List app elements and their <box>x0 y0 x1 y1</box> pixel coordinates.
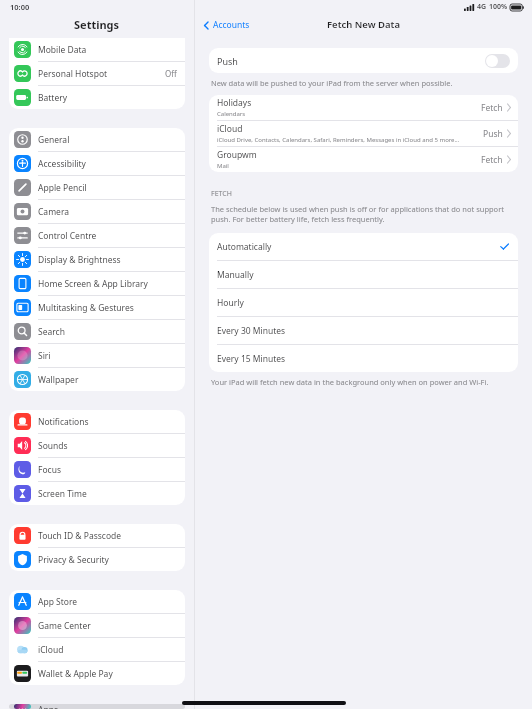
button[interactable]: Wallet & Apple Pay <box>9 662 185 685</box>
staticText: 4G <box>477 2 487 12</box>
staticText: Off <box>165 68 177 79</box>
button[interactable]: Home Screen & App Library <box>9 272 185 295</box>
staticText: iCloud <box>217 123 243 135</box>
button[interactable]: Push <box>209 48 518 73</box>
button[interactable]: Apple Pencil <box>9 176 185 199</box>
button[interactable]: Display & Brightness <box>9 248 185 271</box>
staticText: Focus <box>38 464 177 476</box>
staticText: Fetch <box>481 102 503 114</box>
staticText: 10:00 <box>10 2 30 12</box>
button[interactable]: Holidays <box>209 95 518 120</box>
button[interactable]: Hourly <box>209 289 518 316</box>
staticText: iCloud Drive, Contacts, Calendars, Safar… <box>217 136 460 144</box>
button[interactable]: Search <box>9 320 185 343</box>
staticText: The schedule below is used when push is … <box>211 204 518 224</box>
staticText: Fetch <box>481 154 503 166</box>
button[interactable]: Touch ID & Passcode <box>9 524 185 547</box>
button[interactable]: Automatically <box>209 233 518 260</box>
button[interactable]: Screen Time <box>9 482 185 505</box>
staticText: Manually <box>217 269 509 281</box>
button[interactable]: Camera <box>9 200 185 223</box>
staticText: Every 30 Minutes <box>217 325 509 337</box>
staticText: General <box>38 134 177 146</box>
staticText: Holidays <box>217 97 252 109</box>
staticText: Hourly <box>217 297 509 309</box>
staticText: Home Screen & App Library <box>38 278 177 290</box>
button[interactable]: Wallpaper <box>9 368 185 391</box>
button[interactable]: iCloud <box>9 638 185 661</box>
staticText: Apple Pencil <box>38 182 177 194</box>
button[interactable]: Sounds <box>9 434 185 457</box>
staticText: Privacy & Security <box>38 554 177 566</box>
staticText: Push <box>483 128 503 140</box>
button[interactable]: Every 15 Minutes <box>209 345 518 372</box>
button[interactable]: Accessibility <box>9 152 185 175</box>
staticText: iCloud <box>38 644 177 656</box>
staticText: 100% <box>489 2 508 12</box>
staticText: App Store <box>38 596 177 608</box>
button[interactable]: App Store <box>9 590 185 613</box>
button[interactable]: Focus <box>9 458 185 481</box>
button[interactable]: Battery <box>9 86 185 109</box>
button[interactable]: Personal Hotspot <box>9 62 185 85</box>
button[interactable]: General <box>9 128 185 151</box>
button[interactable]: Game Center <box>9 614 185 637</box>
staticText: Personal Hotspot <box>38 68 165 80</box>
staticText: Display & Brightness <box>38 254 177 266</box>
staticText: Battery <box>38 92 177 104</box>
staticText: Wallpaper <box>38 374 177 386</box>
staticText: Settings <box>74 17 120 32</box>
button[interactable]: Push toggle, off <box>485 54 510 68</box>
staticText: Fetch New Data <box>327 18 401 31</box>
staticText: Camera <box>38 206 177 218</box>
staticText: Apps <box>38 704 58 709</box>
button[interactable]: Groupwm <box>209 147 518 172</box>
staticText: Sounds <box>38 440 177 452</box>
staticText: Automatically <box>217 241 500 253</box>
staticText: Game Center <box>38 620 177 632</box>
staticText: Touch ID & Passcode <box>38 530 177 542</box>
button[interactable]: Every 30 Minutes <box>209 317 518 344</box>
staticText: Mail <box>217 162 229 170</box>
button[interactable]: Manually <box>209 261 518 288</box>
staticText: Multitasking & Gestures <box>38 302 177 314</box>
button[interactable]: Multitasking & Gestures <box>9 296 185 319</box>
button[interactable]: Mobile Data <box>9 38 185 61</box>
staticText: New data will be pushed to your iPad fro… <box>211 78 453 88</box>
staticText: Every 15 Minutes <box>217 353 509 365</box>
staticText: Your iPad will fetch new data in the bac… <box>211 377 489 387</box>
staticText: Notifications <box>38 416 177 428</box>
button[interactable]: Apps <box>9 704 185 709</box>
staticText: Accessibility <box>38 158 177 170</box>
staticText: Search <box>38 326 177 338</box>
staticText: Wallet & Apple Pay <box>38 668 177 680</box>
staticText: Control Centre <box>38 230 177 242</box>
button[interactable]: Accounts <box>195 17 256 33</box>
button[interactable]: Control Centre <box>9 224 185 247</box>
staticText: Push <box>217 55 485 67</box>
staticText: Accounts <box>213 19 250 31</box>
staticText: Siri <box>38 350 177 362</box>
staticText: FETCH <box>211 189 232 199</box>
button[interactable]: Notifications <box>9 410 185 433</box>
staticText: Mobile Data <box>38 44 177 56</box>
button[interactable]: Privacy & Security <box>9 548 185 571</box>
button[interactable]: Siri <box>9 344 185 367</box>
staticText: Calendars <box>217 110 246 118</box>
button[interactable]: iCloud <box>209 121 518 146</box>
staticText: Groupwm <box>217 149 257 161</box>
staticText: Screen Time <box>38 488 177 500</box>
